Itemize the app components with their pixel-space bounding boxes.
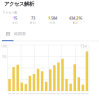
staticText: 09/19 — [65, 93, 69, 94]
staticText: 09/10 — [28, 93, 32, 94]
staticText: 09/9 — [24, 93, 27, 94]
staticText: 09/15 — [48, 93, 52, 94]
staticText: 09/14 — [44, 93, 48, 94]
staticText: 12件 — [80, 45, 87, 48]
staticText: 09/11 — [32, 93, 36, 94]
staticText: 時間帯 — [14, 31, 26, 36]
staticText: 累計 — [72, 21, 78, 24]
staticText: 50 — [3, 55, 7, 59]
staticText: 09/17 — [56, 93, 60, 94]
staticText: 100 — [1, 45, 7, 48]
staticText: 今月 — [49, 21, 55, 24]
staticText: 09/12 — [36, 93, 40, 94]
staticText: 09/23 — [81, 93, 85, 94]
staticText: 昨日 — [30, 21, 36, 24]
staticText: 09/18 — [60, 93, 64, 94]
staticText: 09/5 — [8, 93, 11, 94]
staticText: アクセス解析 — [4, 1, 34, 7]
button[interactable]: 時間帯 — [14, 31, 26, 36]
staticText: 09/21 — [73, 93, 77, 94]
staticText: 09/8 — [20, 93, 23, 94]
staticText: 09/22 — [77, 93, 81, 94]
staticText: 09/7 — [16, 93, 19, 94]
staticText: 09/13 — [40, 93, 44, 94]
staticText: 09/16 — [52, 93, 56, 94]
staticText: アクセス数 — [2, 11, 17, 14]
staticText: 73 — [31, 15, 35, 20]
staticText: 09/6 — [12, 93, 15, 94]
staticText: 09/24 — [85, 93, 89, 94]
staticText: 今日 — [12, 21, 18, 24]
staticText: 434,216 — [69, 15, 82, 20]
staticText: 15 — [13, 15, 17, 20]
staticText: 09/20 — [69, 93, 73, 94]
staticText: 1,584 — [48, 15, 57, 20]
staticText: 日 — [6, 31, 10, 36]
button[interactable]: 日 — [6, 31, 10, 36]
